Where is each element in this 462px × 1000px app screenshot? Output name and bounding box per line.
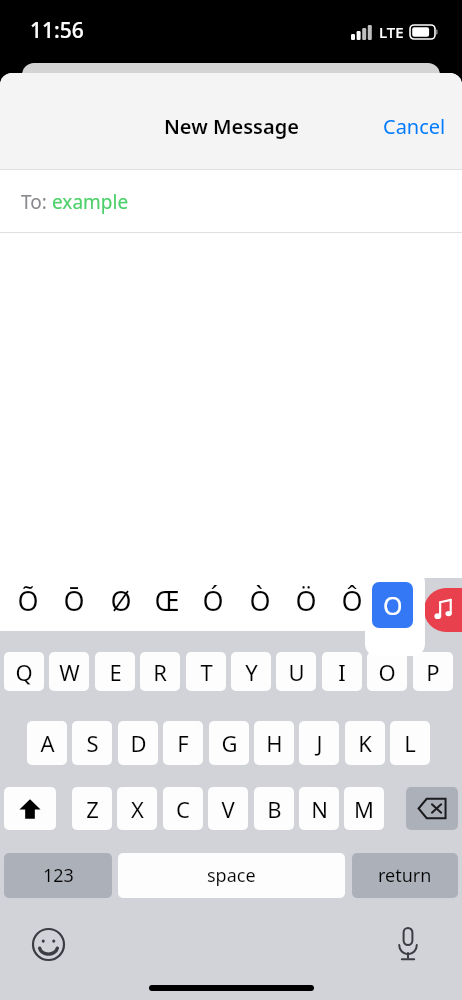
staticText: 11:56 [30, 16, 84, 45]
button[interactable]: O [372, 582, 413, 628]
button[interactable]: T [186, 652, 226, 691]
button[interactable]: B [254, 787, 294, 830]
button[interactable]: E [95, 652, 135, 691]
button[interactable]: Send [411, 951, 444, 984]
button[interactable]: Y [231, 652, 271, 691]
staticText: L [404, 728, 416, 758]
staticText: E [109, 657, 122, 687]
staticText: D [130, 728, 147, 758]
staticText: To: [21, 189, 52, 215]
staticText: R [153, 657, 167, 687]
button[interactable]: X [117, 787, 157, 830]
staticText: Ô [341, 582, 363, 619]
button[interactable]: Shift [4, 787, 56, 830]
button[interactable]: Ö [286, 574, 326, 626]
button[interactable]: C [163, 787, 203, 830]
staticText: N [311, 794, 328, 824]
staticText: G [221, 728, 238, 758]
button[interactable]: Ō [54, 574, 94, 626]
staticText: space [207, 863, 256, 888]
button[interactable]: Apple Music [424, 588, 462, 632]
button[interactable]: Text Message [153, 947, 447, 987]
staticText: Ø [110, 582, 132, 619]
staticText: O [378, 657, 396, 687]
button[interactable]: Œ [147, 574, 187, 626]
staticText: K [358, 728, 372, 758]
staticText: return [378, 863, 432, 888]
button[interactable]: Z [72, 787, 112, 830]
staticText: 123 [43, 863, 74, 888]
staticText: Ó [202, 582, 224, 619]
button[interactable]: space [118, 853, 345, 898]
button[interactable]: W [49, 652, 89, 691]
button[interactable]: J [299, 721, 339, 765]
button[interactable]: Emoji [26, 922, 70, 966]
staticText: Œ [154, 582, 180, 619]
button[interactable]: Ô [332, 574, 372, 626]
button[interactable]: G [209, 721, 249, 765]
staticText: example [52, 189, 129, 215]
staticText: Ö [295, 582, 317, 619]
staticText: M [354, 794, 374, 824]
staticText: H [266, 728, 283, 758]
staticText: LTE [379, 22, 404, 42]
staticText: P [426, 657, 440, 687]
button[interactable]: I [322, 652, 362, 691]
staticText: W [59, 657, 80, 687]
staticText: S [86, 728, 99, 758]
staticText: O [383, 588, 403, 622]
button[interactable]: return [352, 853, 458, 898]
button[interactable]: To: [0, 170, 462, 233]
staticText: Ò [249, 582, 271, 619]
staticText: J [316, 728, 323, 758]
button[interactable]: Backspace [406, 787, 458, 830]
button[interactable]: U [276, 652, 316, 691]
button[interactable]: D [118, 721, 158, 765]
staticText: Z [86, 794, 99, 824]
staticText: C [176, 794, 190, 824]
button[interactable]: R [140, 652, 180, 691]
staticText: Q [15, 657, 33, 687]
button[interactable]: Q [4, 652, 44, 691]
button[interactable]: L [390, 721, 430, 765]
staticText: T [200, 657, 213, 687]
button[interactable]: O [367, 652, 407, 691]
staticText: V [221, 794, 235, 824]
button[interactable]: K [345, 721, 385, 765]
staticText: Õ [17, 582, 39, 619]
button[interactable]: M [344, 787, 384, 830]
button[interactable]: Õ [8, 574, 48, 626]
staticText: A [40, 728, 55, 758]
button[interactable]: F [163, 721, 203, 765]
staticText: I [338, 657, 346, 687]
button[interactable]: A [27, 721, 67, 765]
button[interactable]: 123 [4, 853, 112, 898]
staticText: F [177, 728, 189, 758]
button[interactable]: Dictation [386, 922, 430, 966]
button[interactable]: Camera [12, 943, 62, 993]
button[interactable]: H [254, 721, 294, 765]
button[interactable]: P [413, 652, 453, 691]
staticText: New Message [164, 113, 299, 140]
button[interactable]: Ó [193, 574, 233, 626]
button[interactable]: Cancel [367, 103, 462, 150]
button[interactable]: V [208, 787, 248, 830]
staticText: Ō [63, 582, 85, 619]
button[interactable]: Ò [240, 574, 280, 626]
button[interactable]: S [72, 721, 112, 765]
button[interactable]: N [299, 787, 339, 830]
button[interactable]: Ø [101, 574, 141, 626]
staticText: B [267, 794, 282, 824]
staticText: X [131, 794, 144, 824]
staticText: Cancel [383, 113, 446, 140]
staticText: Y [245, 657, 258, 687]
staticText: U [288, 657, 305, 687]
